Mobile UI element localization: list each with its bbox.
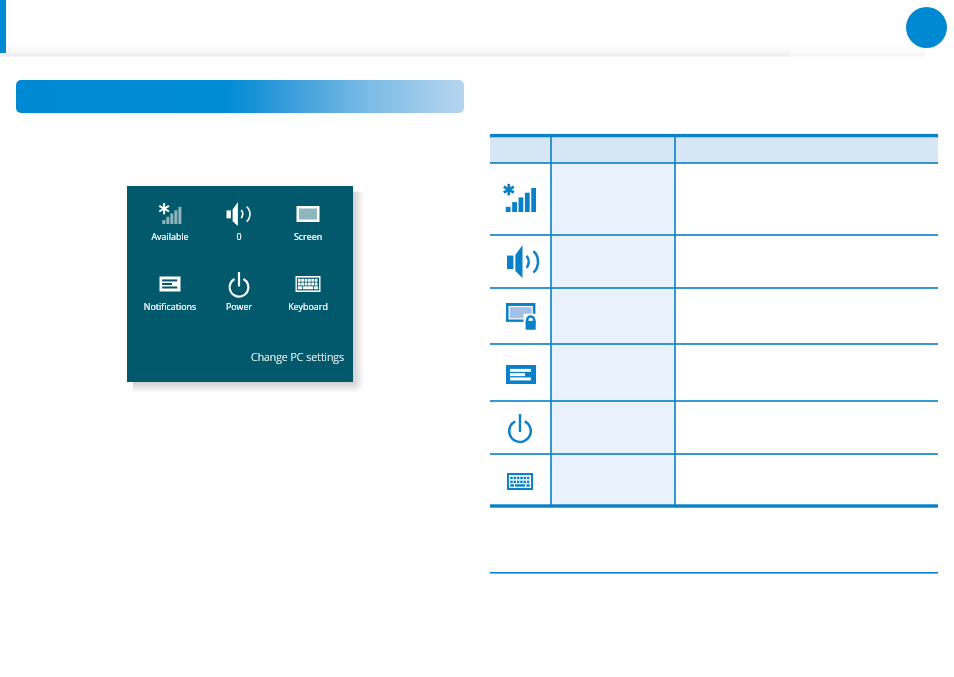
staticText: Change PC settings [251, 349, 344, 364]
staticText: Available [137, 230, 203, 242]
button[interactable]: Keyboard [275, 271, 341, 312]
button[interactable]: Notifications [137, 271, 203, 312]
staticText: 0 [206, 230, 272, 242]
staticText: Power [206, 300, 272, 312]
staticText: Keyboard [275, 300, 341, 312]
button[interactable]: 0 [206, 201, 272, 242]
other: Page number [906, 7, 947, 48]
button[interactable]: Available [137, 201, 203, 242]
button[interactable]: Change PC settings [251, 349, 355, 364]
staticText: Notifications [137, 300, 203, 312]
button[interactable]: Available [127, 186, 353, 382]
button[interactable]: Power [206, 271, 272, 312]
button[interactable]: Screen [275, 201, 341, 242]
staticText: Screen [275, 230, 341, 242]
